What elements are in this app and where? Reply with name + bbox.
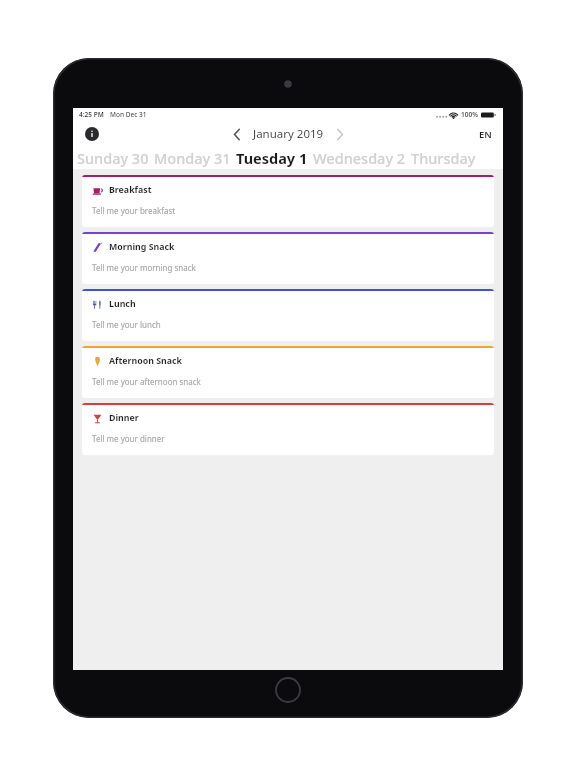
- staticText: Sunday 30: [77, 148, 149, 168]
- staticText: 100%: [461, 110, 478, 119]
- button[interactable]: Sunday 30: [77, 147, 149, 169]
- staticText: Tuesday 1: [236, 148, 308, 168]
- button[interactable]: EN: [476, 126, 495, 143]
- button[interactable]: Next month: [330, 123, 350, 145]
- staticText: Tell me your afternoon snack: [92, 376, 201, 387]
- button[interactable]: Info: [81, 123, 103, 145]
- button[interactable]: Afternoon Snack: [82, 346, 494, 398]
- button[interactable]: January 2019: [251, 126, 326, 142]
- staticText: Tell me your morning snack: [92, 262, 196, 273]
- staticText: Mon Dec 31: [110, 110, 147, 119]
- staticText: 4:25 PM: [79, 110, 104, 119]
- staticText: Tell me your dinner: [92, 433, 165, 444]
- staticText: Tell me your breakfast: [92, 205, 176, 216]
- button[interactable]: Monday 31: [154, 147, 231, 169]
- staticText: Tell me your lunch: [92, 319, 161, 330]
- button[interactable]: Breakfast: [82, 175, 494, 227]
- button[interactable]: Thursday: [411, 147, 476, 169]
- staticText: Monday 31: [154, 148, 231, 168]
- staticText: Breakfast: [109, 184, 152, 196]
- staticText: EN: [479, 128, 492, 141]
- staticText: Thursday: [411, 148, 476, 168]
- staticText: Wednesday 2: [313, 148, 406, 168]
- button[interactable]: Tuesday 1: [236, 147, 308, 169]
- button[interactable]: Lunch: [82, 289, 494, 341]
- button[interactable]: Wednesday 2: [313, 147, 406, 169]
- staticText: January 2019: [253, 126, 324, 142]
- staticText: Dinner: [109, 412, 139, 424]
- staticText: Lunch: [109, 298, 136, 310]
- button[interactable]: Dinner: [82, 403, 494, 455]
- button[interactable]: Home: [274, 676, 302, 704]
- button[interactable]: Morning Snack: [82, 232, 494, 284]
- staticText: Afternoon Snack: [109, 355, 183, 367]
- staticText: Morning Snack: [109, 241, 175, 253]
- button[interactable]: Previous month: [227, 123, 247, 145]
